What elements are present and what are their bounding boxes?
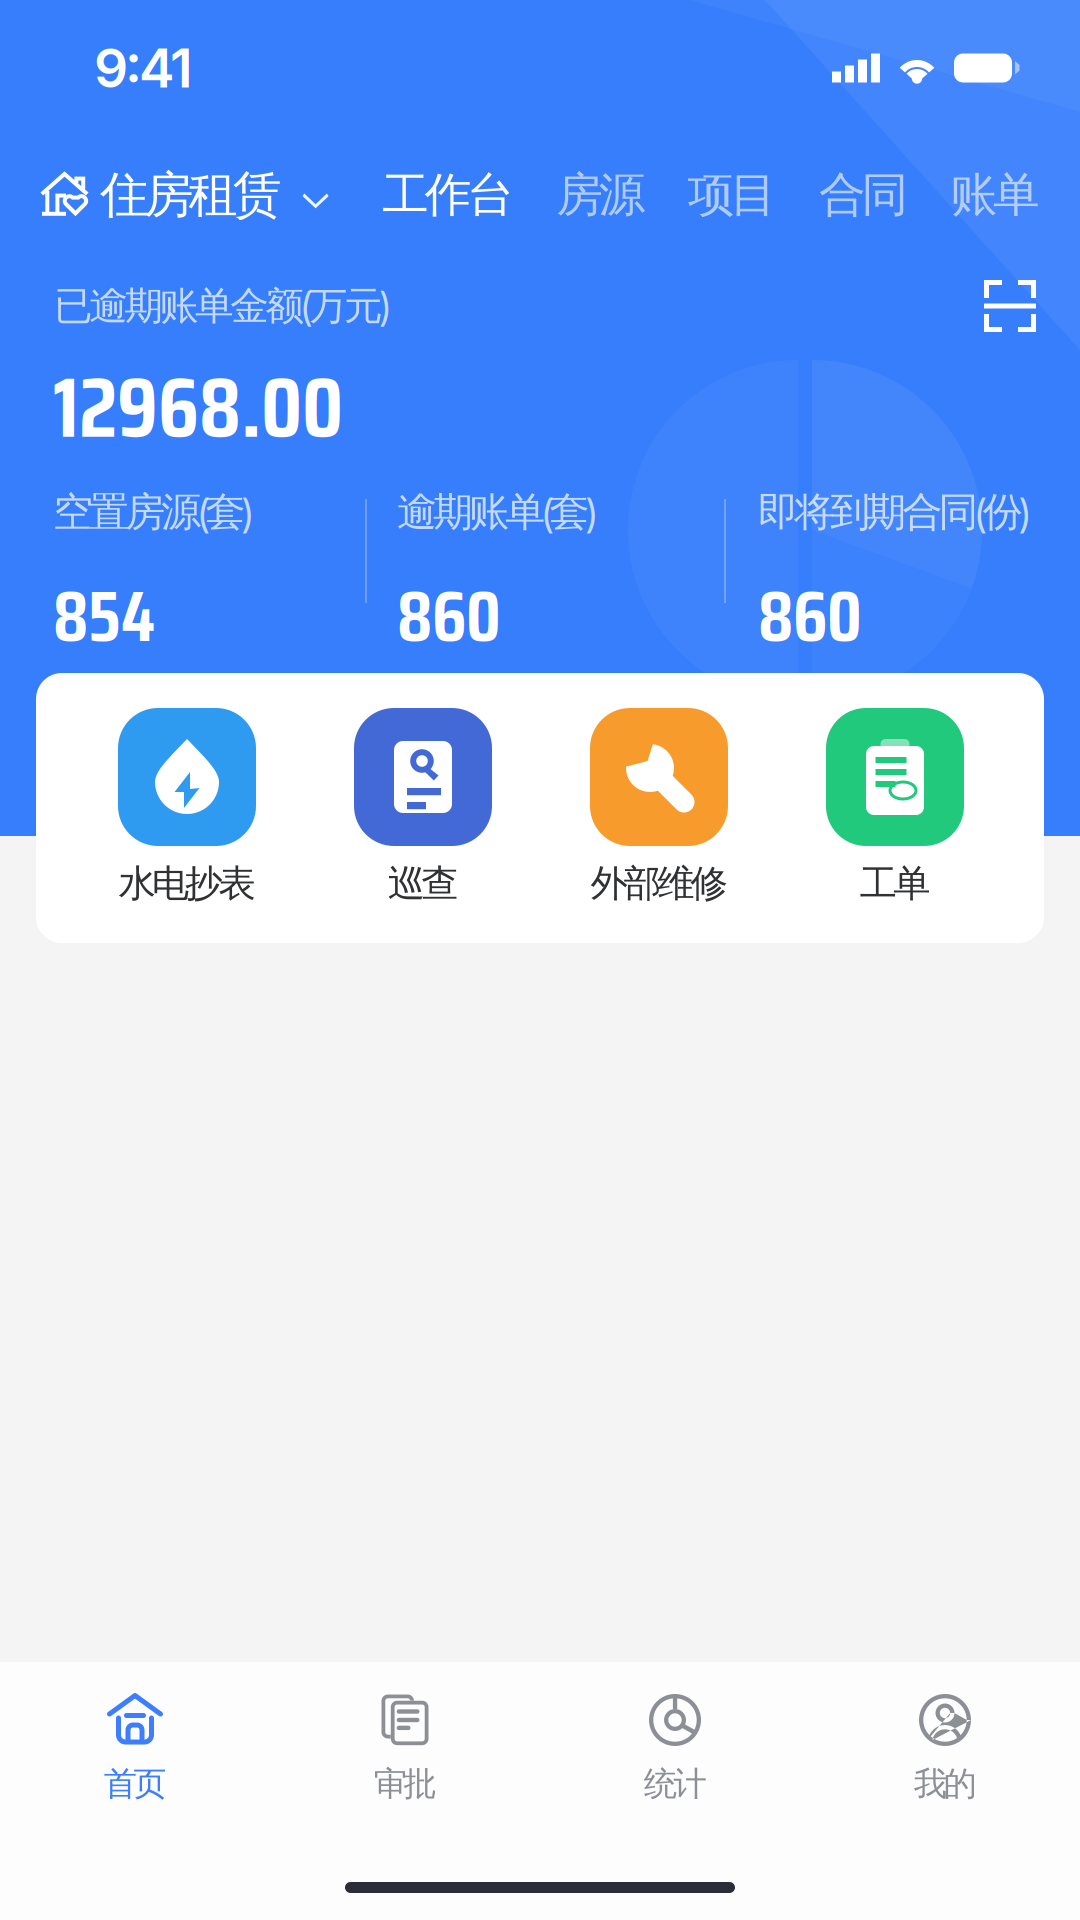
staticText: 统计 [644, 1763, 706, 1805]
staticText: 已逾期账单金额(万元) [54, 282, 391, 330]
button[interactable]: 工单 [777, 708, 1013, 907]
button[interactable]: 首页 [0, 1662, 270, 1920]
staticText: 12968.00 [53, 340, 343, 474]
button[interactable]: 水电抄表 [69, 708, 305, 907]
staticText: 即将到期合同(份) [758, 487, 1031, 537]
staticText: 逾期账单(套) [397, 487, 598, 537]
staticText: 9:41 [94, 36, 193, 100]
button[interactable]: 合同 [819, 166, 909, 224]
staticText: 860 [758, 559, 862, 673]
button[interactable]: 项目 [688, 166, 777, 224]
button[interactable]: 审批 [270, 1662, 540, 1920]
staticText: 项目 [688, 166, 777, 224]
staticText: 合同 [819, 166, 909, 224]
button[interactable]: 住房租赁 [40, 164, 329, 226]
button[interactable]: 我的 [810, 1662, 1080, 1920]
staticText: 工单 [860, 860, 930, 907]
staticText: 首页 [104, 1763, 166, 1805]
staticText: 审批 [374, 1763, 436, 1805]
staticText: 我的 [914, 1763, 976, 1805]
staticText: 住房租赁 [100, 164, 282, 226]
button[interactable]: 外部维修 [541, 708, 777, 907]
staticText: 860 [397, 559, 501, 673]
button[interactable]: 扫一扫 [984, 280, 1036, 332]
staticText: 工作台 [382, 166, 514, 224]
button[interactable]: 统计 [540, 1662, 810, 1920]
staticText: 房源 [556, 166, 646, 224]
staticText: 空置房源(套) [53, 487, 254, 537]
staticText: 巡查 [388, 860, 458, 907]
button[interactable]: 工作台 [382, 166, 514, 224]
staticText: 外部维修 [590, 860, 728, 907]
button[interactable]: 房源 [556, 166, 646, 224]
staticText: 水电抄表 [118, 860, 256, 907]
button[interactable]: 巡查 [305, 708, 541, 907]
staticText: 账单 [950, 166, 1040, 224]
staticText: 854 [53, 559, 155, 673]
button[interactable]: 账单 [950, 166, 1040, 224]
